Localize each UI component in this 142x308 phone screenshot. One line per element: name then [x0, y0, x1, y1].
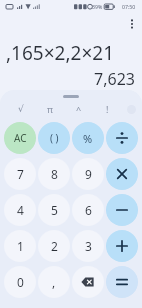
- button[interactable]: 7: [4, 158, 36, 190]
- button[interactable]: ^: [64, 99, 93, 119]
- button[interactable]: Backspace: [72, 266, 104, 298]
- button[interactable]: %: [72, 122, 104, 154]
- staticText: ^: [76, 103, 82, 115]
- button[interactable]: 9: [72, 158, 104, 190]
- button[interactable]: √: [6, 99, 35, 119]
- button[interactable]: 0: [4, 266, 36, 298]
- button[interactable]: 6: [72, 194, 104, 226]
- staticText: 6: [85, 202, 92, 218]
- staticText: ( ): [50, 131, 59, 145]
- button[interactable]: π: [35, 99, 64, 119]
- staticText: !: [106, 103, 109, 115]
- button[interactable]: ( ): [38, 122, 70, 154]
- staticText: π: [47, 103, 53, 115]
- button[interactable]: 5: [38, 194, 70, 226]
- staticText: 39%: [92, 3, 103, 10]
- staticText: 3: [85, 238, 92, 254]
- staticText: 9: [85, 166, 92, 182]
- staticText: 2: [51, 238, 58, 254]
- button[interactable]: AC: [4, 122, 36, 154]
- staticText: ,165×2,2×21: [6, 40, 135, 66]
- button[interactable]: [122, 99, 140, 119]
- button[interactable]: Minus: [106, 194, 138, 226]
- staticText: √: [18, 104, 24, 114]
- button[interactable]: Multiply: [106, 158, 138, 190]
- button[interactable]: 8: [38, 158, 70, 190]
- staticText: 7: [17, 166, 24, 182]
- button[interactable]: 4: [4, 194, 36, 226]
- staticText: ,: [52, 274, 56, 290]
- staticText: 0: [17, 274, 24, 290]
- staticText: 4: [17, 202, 24, 218]
- button[interactable]: Equals: [106, 266, 138, 298]
- button[interactable]: 1: [4, 230, 36, 262]
- button[interactable]: !: [93, 99, 122, 119]
- button[interactable]: 3: [72, 230, 104, 262]
- staticText: 8: [51, 166, 58, 182]
- button[interactable]: More options: [124, 16, 140, 32]
- button[interactable]: Divide: [106, 122, 138, 154]
- staticText: AC: [14, 131, 27, 145]
- staticText: 07:50: [122, 3, 136, 10]
- button[interactable]: Plus: [106, 230, 138, 262]
- button[interactable]: 2: [38, 230, 70, 262]
- staticText: 1: [17, 238, 24, 254]
- staticText: %: [83, 131, 93, 146]
- button[interactable]: ,: [38, 266, 70, 298]
- staticText: 7,623: [6, 68, 135, 90]
- staticText: 5: [51, 202, 58, 218]
